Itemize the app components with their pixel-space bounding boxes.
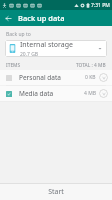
staticText: ITEMS bbox=[6, 62, 21, 69]
button[interactable]: Back up to Internal storage bbox=[5, 40, 107, 57]
staticText: Back up data bbox=[18, 13, 65, 23]
staticText: Media data bbox=[19, 89, 54, 98]
staticText: 20.7 GB bbox=[20, 51, 39, 57]
staticText: Internal storage bbox=[20, 40, 73, 50]
staticText: Start bbox=[48, 187, 64, 197]
button[interactable]: Expand Personal data bbox=[99, 73, 108, 82]
staticText: Back up to bbox=[6, 31, 31, 38]
staticText: TOTAL : 4 MB bbox=[76, 62, 106, 69]
staticText: 7:31 PM bbox=[91, 2, 110, 9]
staticText: 0 KB bbox=[85, 74, 96, 81]
button[interactable]: Start bbox=[0, 184, 112, 200]
button[interactable]: Expand Media data bbox=[99, 89, 108, 98]
staticText: Personal data bbox=[19, 73, 61, 82]
button[interactable]: Back bbox=[1, 11, 15, 25]
button[interactable]: Media data bbox=[0, 86, 112, 101]
staticText: 4 MB bbox=[84, 90, 96, 97]
button[interactable]: Personal data bbox=[0, 70, 112, 85]
